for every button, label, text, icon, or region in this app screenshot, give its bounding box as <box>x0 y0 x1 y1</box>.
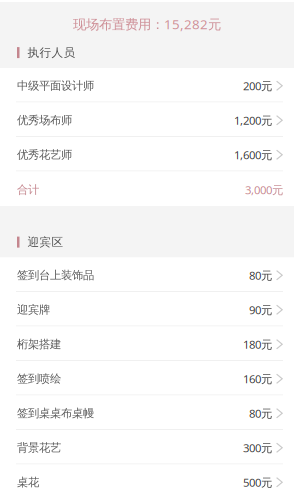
staticText: 签到喷绘 <box>17 372 61 386</box>
staticText: 优秀花艺师 <box>17 148 72 162</box>
button[interactable]: 优秀花艺师 <box>0 137 294 170</box>
button[interactable]: 迎宾牌 <box>0 292 294 325</box>
button[interactable]: 签到喷绘 <box>0 361 294 394</box>
staticText: 180元 <box>243 336 272 352</box>
staticText: 桁架搭建 <box>17 337 61 351</box>
staticText: 执行人员 <box>27 45 75 60</box>
staticText: 桌花 <box>17 475 39 489</box>
staticText: 160元 <box>243 371 272 386</box>
staticText: 签到桌桌布桌幔 <box>17 406 94 420</box>
staticText: 中级平面设计师 <box>17 79 94 93</box>
button[interactable]: 桌花 <box>0 464 294 498</box>
button[interactable]: 桁架搭建 <box>0 326 294 360</box>
button[interactable]: 优秀场布师 <box>0 102 294 136</box>
staticText: 80元 <box>249 267 272 283</box>
staticText: 签到台上装饰品 <box>17 268 94 282</box>
staticText: 90元 <box>249 302 272 317</box>
staticText: 500元 <box>243 474 272 490</box>
staticText: 1,600元 <box>234 147 272 162</box>
staticText: 合计 <box>17 183 39 197</box>
staticText: 优秀场布师 <box>17 113 72 127</box>
button[interactable]: 背景花艺 <box>0 430 294 463</box>
staticText: 3,000元 <box>245 182 283 197</box>
staticText: 300元 <box>243 440 272 455</box>
button[interactable]: 签到台上装饰品 <box>0 257 294 291</box>
button[interactable]: 中级平面设计师 <box>0 68 294 101</box>
staticText: 1,200元 <box>234 112 272 128</box>
staticText: 迎宾区 <box>27 235 63 249</box>
staticText: 80元 <box>249 405 272 421</box>
staticText: 200元 <box>243 78 272 93</box>
staticText: 现场布置费用：15,282元 <box>73 15 221 33</box>
button[interactable]: 签到桌桌布桌幔 <box>0 395 294 429</box>
staticText: 迎宾牌 <box>17 303 50 317</box>
staticText: 背景花艺 <box>17 441 61 455</box>
